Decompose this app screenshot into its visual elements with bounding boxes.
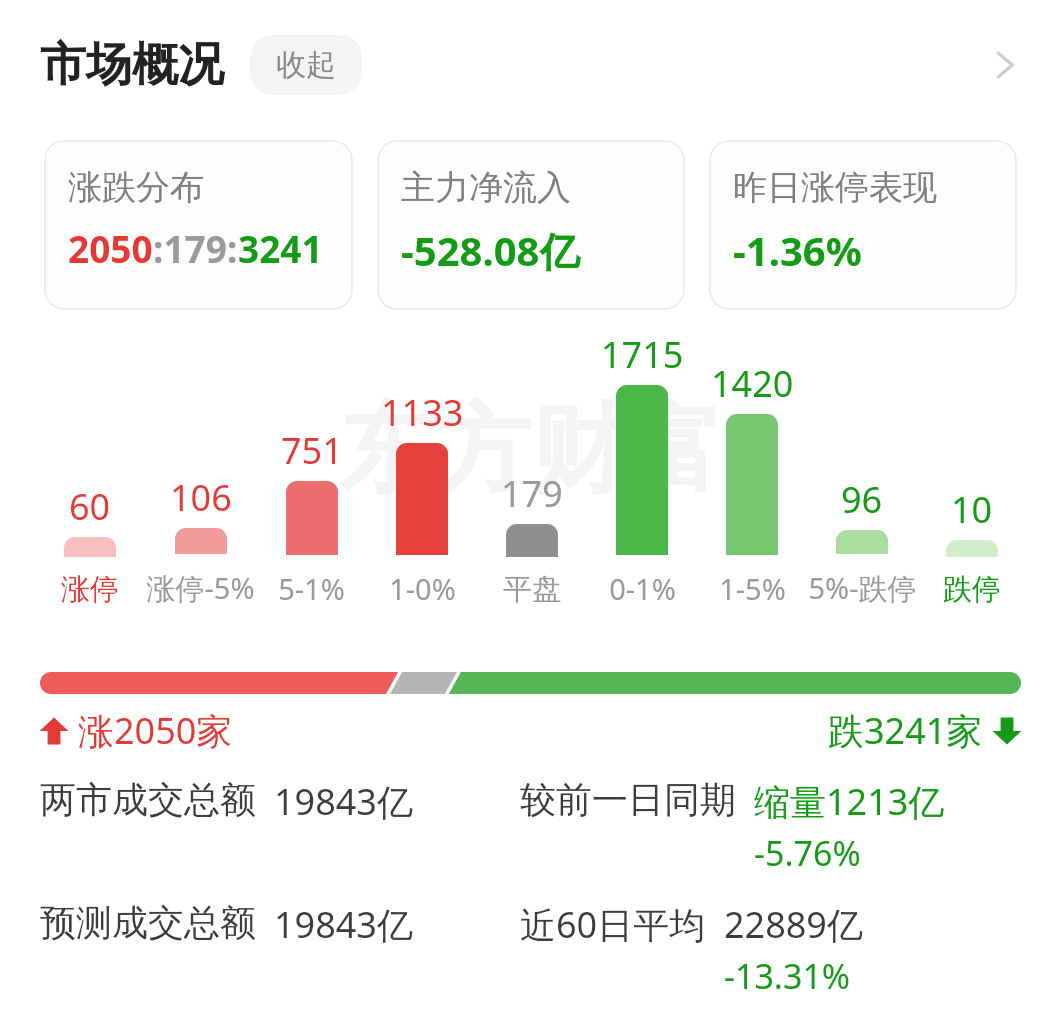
staticText: 19843亿 — [274, 900, 413, 949]
staticText: -528.08亿 — [401, 223, 580, 278]
button[interactable]: 主力净流入 — [377, 140, 685, 310]
staticText: 22889亿 — [724, 900, 863, 949]
staticText: 主力净流入 — [401, 166, 571, 209]
staticText: 市场概况 — [40, 36, 224, 94]
staticText: 1715 — [601, 330, 684, 379]
staticText: 收起 — [276, 46, 336, 84]
staticText: 平盘 — [503, 571, 561, 608]
staticText: -5.76% — [754, 830, 861, 876]
staticText: -1.36% — [733, 223, 862, 277]
button[interactable]: 涨跌分布 — [44, 140, 353, 310]
staticText: 较前一日同期 — [520, 777, 736, 822]
staticText: -13.31% — [724, 953, 851, 999]
staticText: 106 — [170, 473, 232, 522]
staticText: 5%-跌停 — [808, 568, 917, 608]
button[interactable]: 昨日涨停表现 — [709, 140, 1017, 310]
staticText: 涨跌分布 — [68, 166, 204, 209]
staticText: 2050 — [68, 223, 153, 273]
staticText: 两市成交总额 — [40, 777, 256, 822]
staticText: 涨2050家 — [78, 706, 233, 755]
staticText: 涨停 — [61, 571, 119, 608]
staticText: 缩量1213亿 — [754, 777, 945, 826]
staticText: 60 — [69, 482, 111, 531]
staticText: 10 — [951, 485, 993, 534]
staticText: 96 — [841, 475, 883, 524]
button[interactable]: More — [977, 37, 1033, 93]
staticText: 751 — [281, 426, 343, 475]
staticText: 5-1% — [278, 569, 345, 608]
staticText: 预测成交总额 — [40, 900, 256, 945]
staticText: 东方财富 — [339, 390, 723, 511]
staticText: 19843亿 — [274, 777, 413, 826]
staticText: 近60日平均 — [520, 900, 706, 949]
staticText: :179: — [153, 223, 238, 273]
staticText: 跌停 — [943, 571, 1001, 608]
staticText: 3241 — [238, 223, 323, 273]
staticText: 1133 — [381, 388, 464, 437]
staticText: 1-5% — [719, 569, 786, 608]
staticText: 昨日涨停表现 — [733, 166, 937, 209]
staticText: 179 — [501, 469, 563, 518]
button[interactable]: 收起 — [250, 35, 362, 95]
staticText: 0-1% — [609, 569, 676, 608]
staticText: 1-0% — [389, 569, 456, 608]
staticText: 1420 — [711, 359, 794, 408]
staticText: 跌3241家 — [828, 706, 983, 755]
staticText: 涨停-5% — [146, 568, 255, 608]
